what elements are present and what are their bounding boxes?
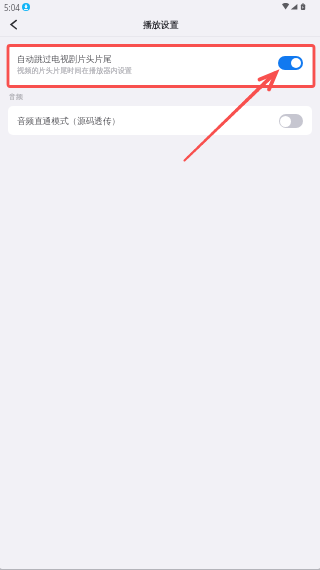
staticText: 视频的片头片尾时间在播放器内设置 bbox=[17, 66, 132, 75]
staticText: 音频直通模式（源码透传） bbox=[17, 116, 121, 127]
staticText: 自动跳过电视剧片头片尾 bbox=[17, 54, 112, 65]
staticText: 播放设置 bbox=[143, 20, 179, 31]
staticText: 音频 bbox=[9, 92, 23, 101]
button[interactable]: 自动跳过电视剧片头片尾 开关 bbox=[278, 56, 303, 70]
staticText: 5:04 bbox=[4, 2, 20, 13]
button[interactable]: 音频直通模式 开关 bbox=[279, 114, 303, 128]
button[interactable]: 自动跳过电视剧片头片尾 bbox=[8, 45, 312, 87]
button[interactable]: 音频直通模式（源码透传） bbox=[8, 106, 312, 135]
button[interactable]: Back bbox=[2, 14, 24, 36]
